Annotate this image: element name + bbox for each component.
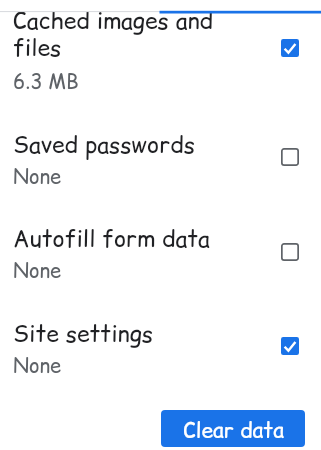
button[interactable]: Unchecked [281, 243, 299, 261]
button[interactable]: Unchecked [281, 148, 299, 166]
button[interactable]: Saved passwords [0, 100, 321, 195]
button[interactable]: Checked [281, 39, 299, 57]
staticText: None [13, 163, 61, 191]
staticText: 6.3 MB [13, 68, 79, 96]
staticText: None [13, 352, 61, 380]
staticText: Clear data [183, 416, 284, 445]
button[interactable]: Checked [281, 337, 299, 355]
staticText: Site settings [13, 318, 253, 350]
staticText: Saved passwords [13, 129, 253, 161]
staticText: None [13, 257, 61, 285]
button[interactable]: Cached images and files [0, 0, 321, 100]
staticText: Cached images and files [13, 5, 253, 63]
button[interactable]: Site settings [0, 290, 321, 385]
button[interactable]: Autofill form data [0, 195, 321, 290]
staticText: Autofill form data [13, 223, 253, 255]
button[interactable]: Clear data [161, 410, 305, 447]
